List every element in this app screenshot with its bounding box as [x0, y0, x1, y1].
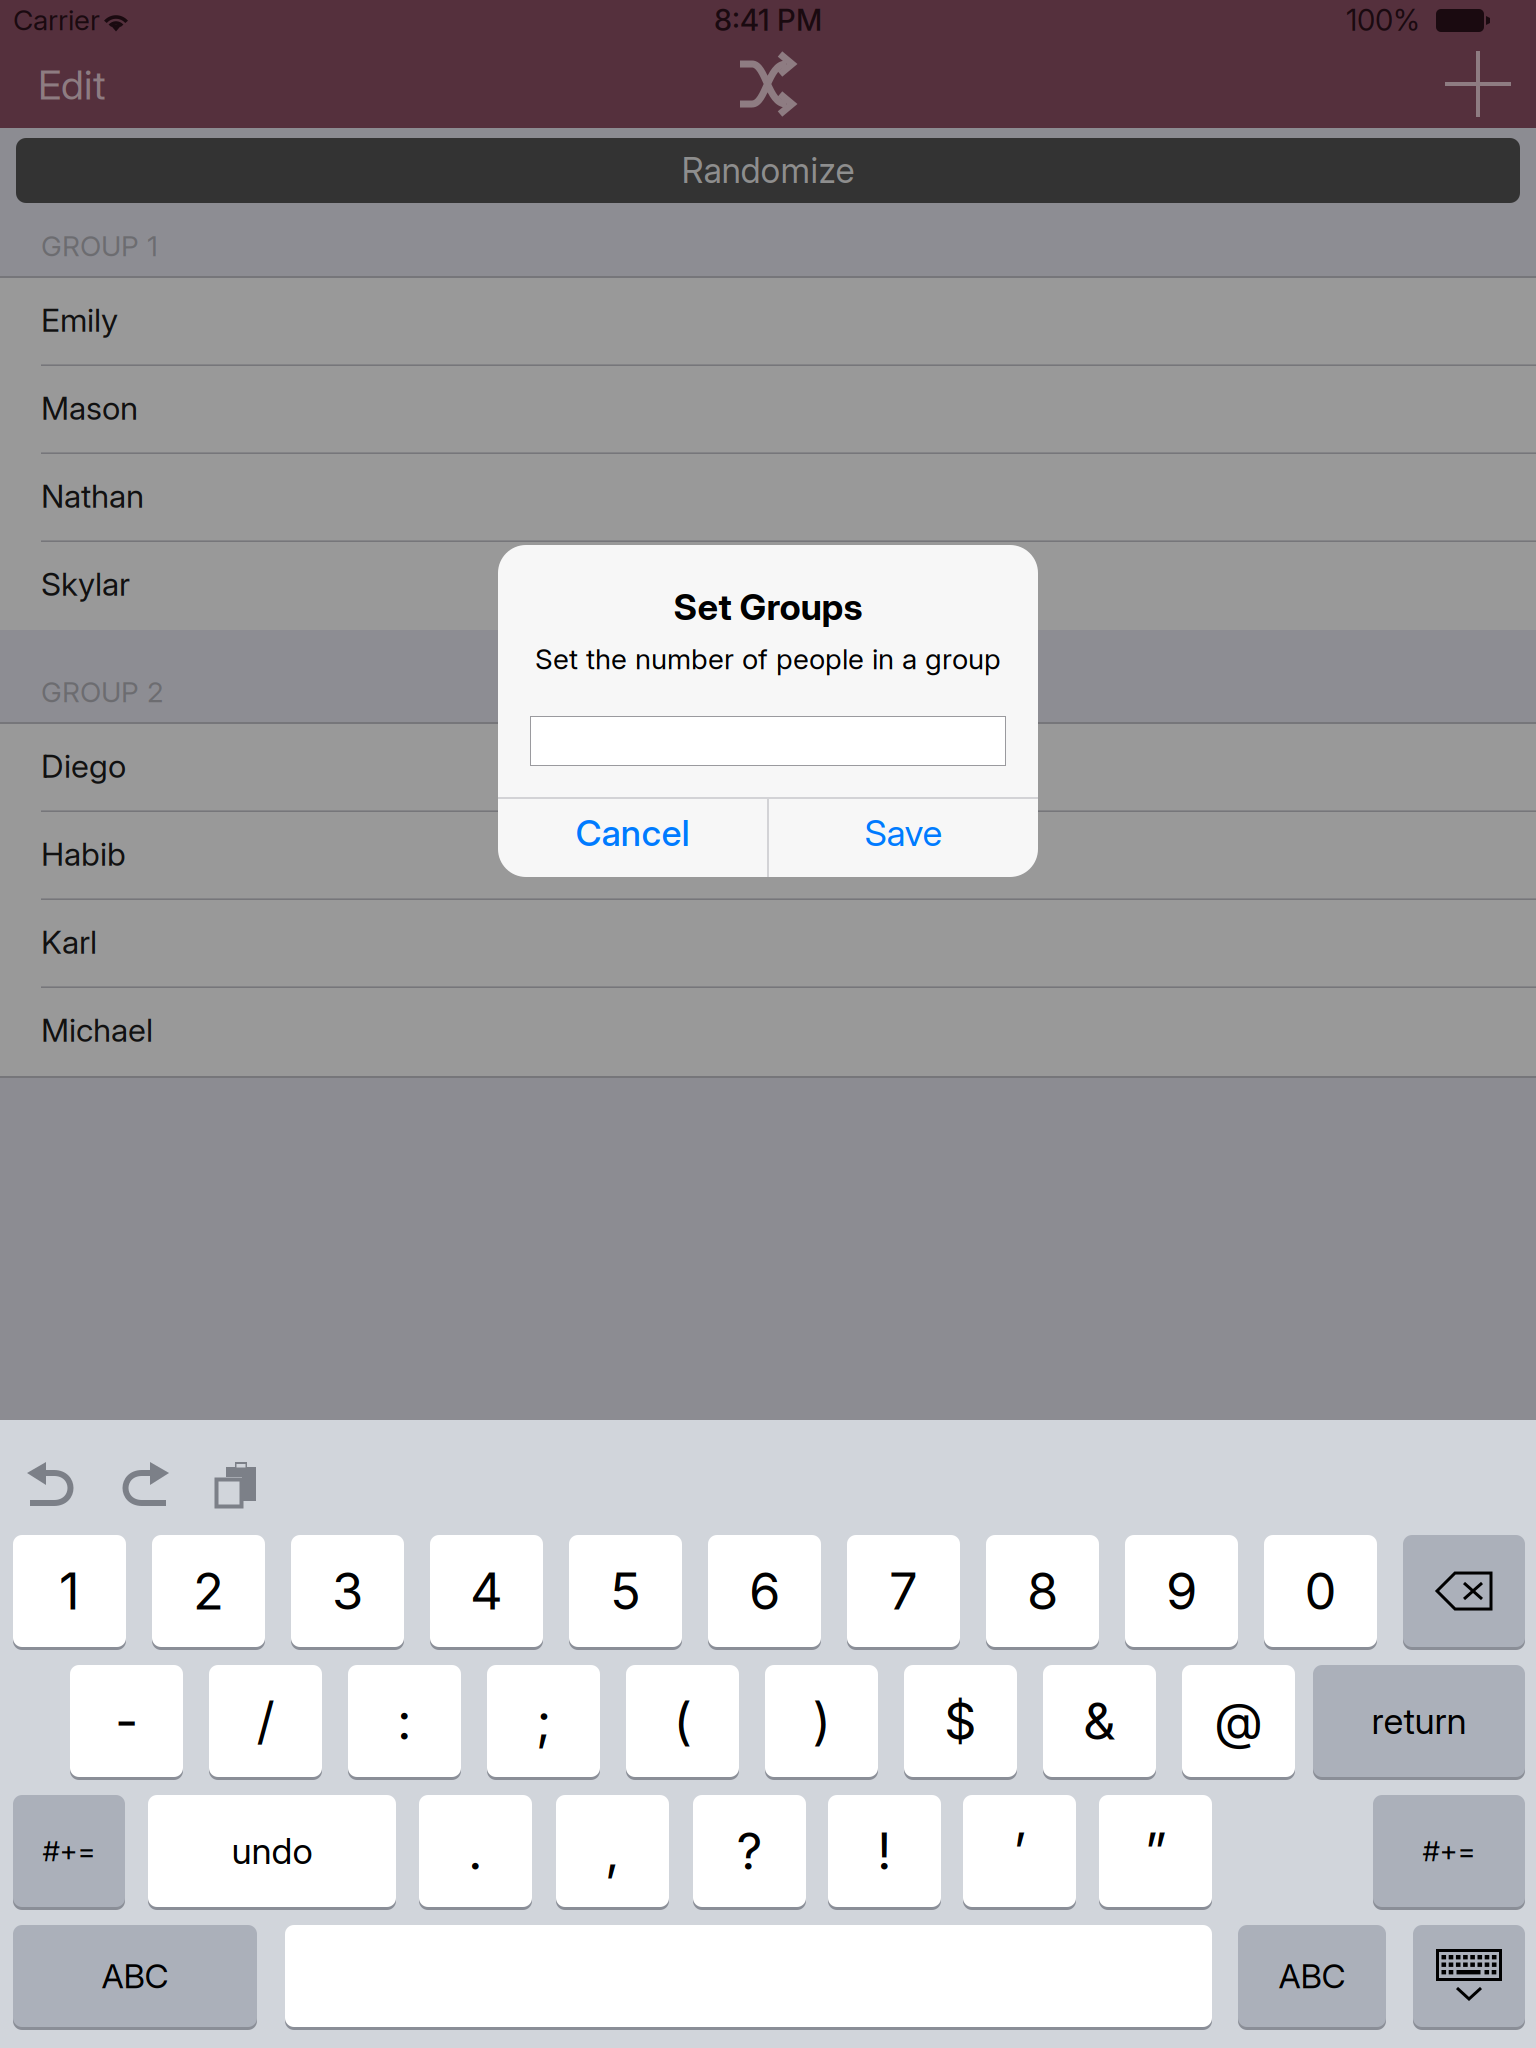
button[interactable]: 3: [291, 1535, 404, 1650]
staticText: ABC: [101, 1956, 168, 1996]
button[interactable]: (: [626, 1665, 739, 1780]
button[interactable]: -: [70, 1665, 183, 1780]
staticText: Randomize: [681, 149, 854, 191]
button[interactable]: :: [348, 1665, 461, 1780]
staticText: !: [877, 1820, 892, 1882]
staticText: 100%: [1346, 2, 1420, 38]
staticText: -: [115, 1690, 138, 1752]
staticText: 8:41 PM: [714, 2, 822, 38]
staticText: #+=: [42, 1834, 95, 1868]
button[interactable]: Mason: [0, 366, 1536, 454]
staticText: ABC: [1278, 1956, 1345, 1996]
staticText: Karl: [41, 923, 97, 961]
staticText: #+=: [1422, 1834, 1475, 1868]
staticText: Michael: [41, 1011, 153, 1049]
staticText: return: [1371, 1699, 1466, 1743]
staticText: .: [468, 1820, 483, 1882]
button[interactable]: Undo: [16, 1445, 88, 1523]
button[interactable]: Add: [1428, 40, 1528, 128]
staticText: ”: [1144, 1820, 1166, 1882]
staticText: Set Groups: [673, 585, 862, 629]
button[interactable]: $: [904, 1665, 1017, 1780]
button[interactable]: 5: [569, 1535, 682, 1650]
button[interactable]: Diego: [0, 724, 1536, 812]
button[interactable]: Skylar: [0, 542, 1536, 630]
staticText: 7: [889, 1560, 918, 1622]
staticText: 9: [1166, 1560, 1197, 1622]
button[interactable]: ;: [487, 1665, 600, 1780]
staticText: 5: [610, 1560, 641, 1622]
staticText: Nathan: [41, 477, 144, 515]
button[interactable]: Edit: [30, 46, 146, 118]
staticText: Mason: [41, 389, 138, 427]
button[interactable]: undo: [148, 1795, 396, 1910]
button[interactable]: ”: [1099, 1795, 1212, 1910]
button[interactable]: Redo: [108, 1445, 180, 1523]
button[interactable]: return: [1313, 1665, 1525, 1780]
button[interactable]: Save: [769, 799, 1038, 877]
staticText: GROUP 1: [41, 229, 158, 263]
button[interactable]: Paste: [198, 1445, 270, 1523]
staticText: /: [256, 1690, 274, 1752]
staticText: 4: [470, 1560, 503, 1622]
staticText: ;: [536, 1690, 551, 1752]
button[interactable]: @: [1182, 1665, 1295, 1780]
staticText: 0: [1304, 1560, 1336, 1622]
staticText: ?: [736, 1820, 762, 1882]
button[interactable]: 9: [1125, 1535, 1238, 1650]
button[interactable]: ?: [693, 1795, 806, 1910]
button[interactable]: /: [209, 1665, 322, 1780]
staticText: Skylar: [41, 565, 130, 603]
staticText: ’: [1013, 1820, 1026, 1882]
button[interactable]: Dismiss keyboard: [1413, 1925, 1525, 2030]
staticText: Emily: [41, 301, 118, 339]
staticText: 6: [749, 1560, 780, 1622]
button[interactable]: 1: [13, 1535, 126, 1650]
button[interactable]: Delete: [1403, 1535, 1525, 1650]
staticText: &: [1083, 1690, 1116, 1752]
staticText: 8: [1027, 1560, 1058, 1622]
staticText: ): [812, 1690, 830, 1752]
button[interactable]: ): [765, 1665, 878, 1780]
button[interactable]: ’: [963, 1795, 1076, 1910]
staticText: undo: [231, 1829, 312, 1873]
button[interactable]: 0: [1264, 1535, 1377, 1650]
button[interactable]: ABC: [1238, 1925, 1386, 2030]
button[interactable]: #+=: [1373, 1795, 1525, 1910]
staticText: Edit: [38, 61, 106, 109]
staticText: Cancel: [575, 811, 689, 855]
button[interactable]: 6: [708, 1535, 821, 1650]
button[interactable]: [285, 1925, 1212, 2030]
staticText: (: [673, 1690, 691, 1752]
button[interactable]: Karl: [0, 900, 1536, 988]
button[interactable]: Randomize: [16, 138, 1520, 203]
button[interactable]: 2: [152, 1535, 265, 1650]
button[interactable]: Nathan: [0, 454, 1536, 542]
button[interactable]: 7: [847, 1535, 960, 1650]
button[interactable]: 8: [986, 1535, 1099, 1650]
staticText: @: [1214, 1690, 1263, 1752]
button[interactable]: Cancel: [498, 799, 767, 877]
button[interactable]: Michael: [0, 988, 1536, 1076]
staticText: GROUP 2: [41, 675, 164, 709]
button[interactable]: ,: [556, 1795, 669, 1910]
staticText: Save: [864, 811, 942, 855]
button[interactable]: &: [1043, 1665, 1156, 1780]
button[interactable]: Habib: [0, 812, 1536, 900]
staticText: Habib: [41, 835, 126, 873]
button[interactable]: Shuffle: [720, 42, 816, 126]
staticText: Diego: [41, 747, 126, 785]
button[interactable]: 4: [430, 1535, 543, 1650]
staticText: 1: [59, 1560, 80, 1622]
staticText: Set the number of people in a group: [535, 642, 1001, 676]
button[interactable]: .: [419, 1795, 532, 1910]
staticText: 2: [193, 1560, 224, 1622]
button[interactable]: Emily: [0, 278, 1536, 366]
button[interactable]: ABC: [13, 1925, 257, 2030]
staticText: :: [397, 1690, 412, 1752]
staticText: $: [944, 1690, 977, 1752]
button[interactable]: #+=: [13, 1795, 125, 1910]
button[interactable]: !: [828, 1795, 941, 1910]
staticText: ,: [605, 1820, 620, 1882]
staticText: Carrier: [13, 3, 100, 37]
